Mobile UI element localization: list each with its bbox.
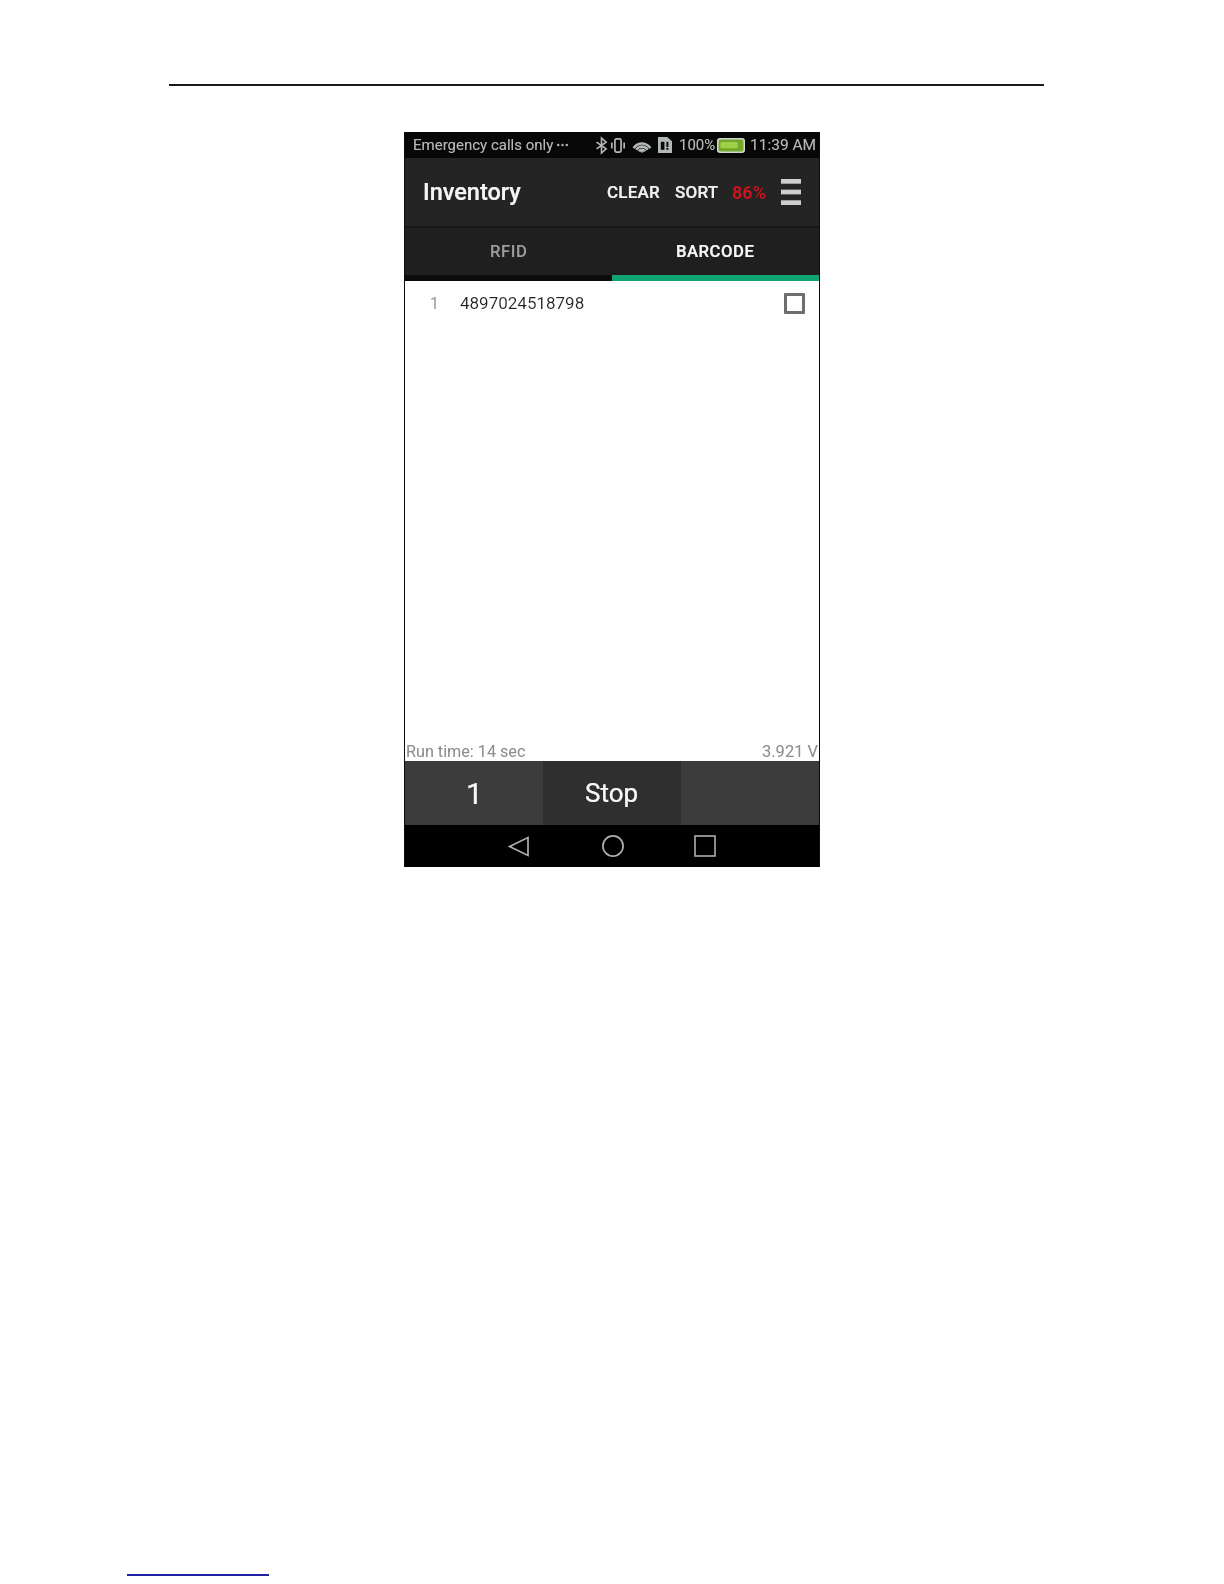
staticText: Run time: 14 sec	[406, 742, 526, 761]
staticText: 1	[466, 776, 483, 811]
button[interactable]: Stop	[543, 761, 681, 825]
button[interactable]: BARCODE	[612, 228, 819, 275]
staticText: SORT	[675, 182, 719, 202]
staticText: 86%	[732, 182, 766, 203]
button[interactable]: Recents	[681, 825, 729, 867]
button[interactable]: Back	[495, 825, 543, 867]
staticText: BARCODE	[676, 242, 755, 262]
staticText: Inventory	[423, 178, 521, 206]
button[interactable]: RFID	[405, 228, 612, 275]
button[interactable]: 1	[405, 761, 543, 825]
staticText: 4897024518798	[460, 293, 585, 313]
button[interactable]: Inventory	[411, 158, 531, 226]
staticText: 3.921 V	[762, 742, 819, 761]
button[interactable]: 86%	[726, 158, 772, 226]
staticText: 1	[430, 294, 439, 313]
staticText: 100%	[679, 136, 716, 154]
button[interactable]: Select item	[774, 281, 814, 325]
button[interactable]: Home	[589, 825, 637, 867]
staticText: RFID	[490, 242, 528, 262]
button[interactable]: SORT	[672, 158, 722, 226]
button[interactable]: Menu	[771, 158, 811, 226]
staticText: Emergency calls only	[413, 136, 554, 154]
staticText: Stop	[585, 778, 639, 808]
button[interactable]: CLEAR	[599, 158, 667, 226]
staticText: CLEAR	[607, 182, 660, 202]
button[interactable]: 1	[405, 281, 819, 325]
staticText: 11:39 AM	[750, 136, 817, 154]
